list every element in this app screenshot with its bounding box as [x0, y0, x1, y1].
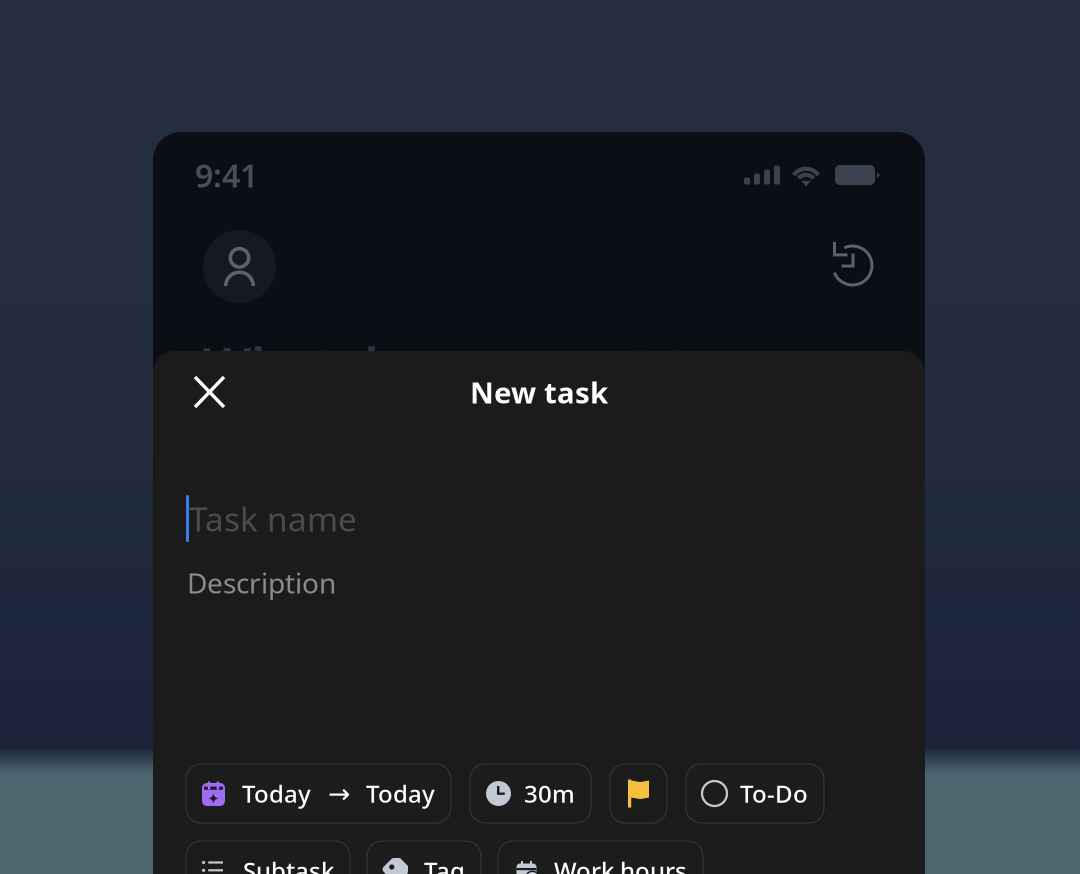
button[interactable]: To-Do — [686, 764, 824, 823]
staticText: What do you want to — [203, 331, 717, 398]
staticText: Subtask — [243, 855, 334, 874]
staticText: New task — [470, 372, 608, 411]
button[interactable]: Subtask — [186, 841, 350, 874]
button[interactable]: History — [828, 240, 874, 286]
staticText: → — [328, 778, 350, 809]
staticText: Task name — [189, 496, 357, 541]
button[interactable]: Work hours — [498, 841, 703, 874]
button[interactable]: Today — [186, 764, 451, 823]
button[interactable] — [610, 764, 667, 823]
button[interactable]: Profile — [203, 230, 276, 303]
staticText: To-Do — [740, 778, 808, 809]
staticText: Today — [366, 778, 435, 809]
button[interactable]: Close — [184, 366, 235, 418]
button[interactable]: Tag — [367, 841, 481, 874]
staticText: Work hours — [554, 855, 687, 874]
staticText: Tag — [424, 855, 465, 874]
staticText: Description — [187, 564, 336, 601]
staticText: 9:41 — [195, 154, 258, 196]
staticText: Today — [242, 778, 311, 809]
staticText: 30m — [524, 778, 575, 809]
button[interactable]: 30m — [470, 764, 591, 823]
